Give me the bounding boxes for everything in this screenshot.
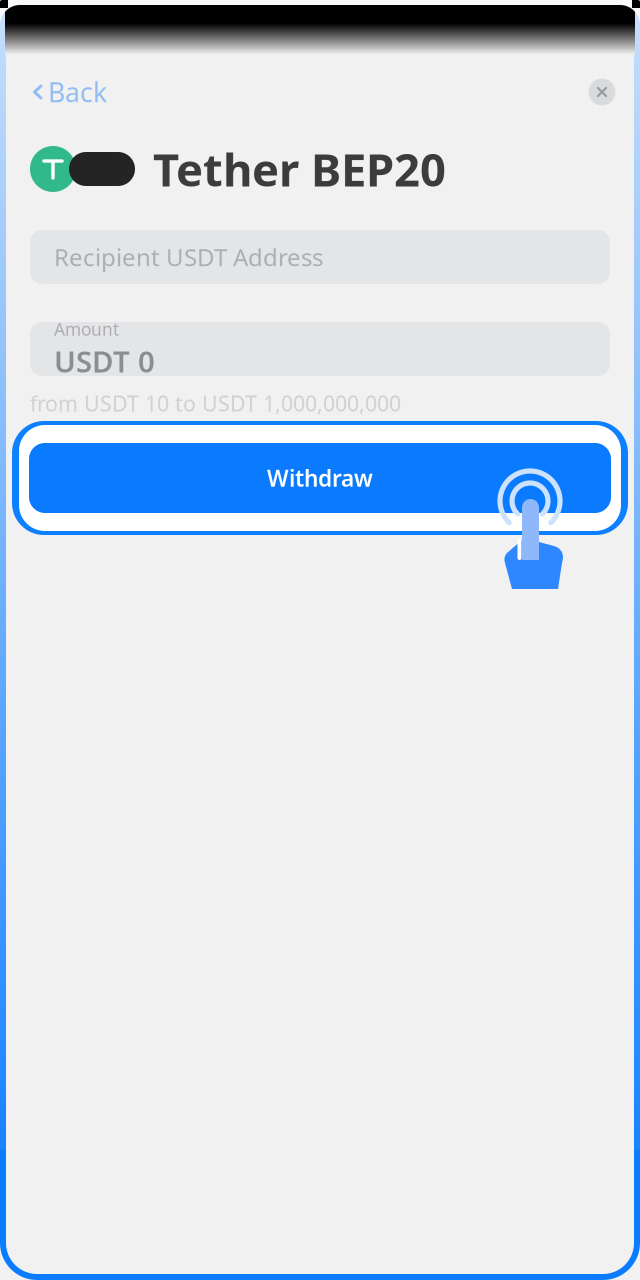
staticText: Back (48, 74, 107, 110)
button[interactable]: Back (22, 70, 117, 114)
button[interactable]: Close (580, 70, 624, 114)
staticText: Recipient USDT Address (54, 241, 323, 273)
staticText: Amount (54, 317, 119, 340)
staticText: Withdraw (267, 463, 373, 493)
staticText: Tether BEP20 (153, 139, 446, 199)
staticText: from USDT 10 to USDT 1,000,000,000 (30, 389, 401, 417)
staticText: USDT 0 (54, 341, 155, 380)
button[interactable]: Withdraw (29, 443, 611, 513)
